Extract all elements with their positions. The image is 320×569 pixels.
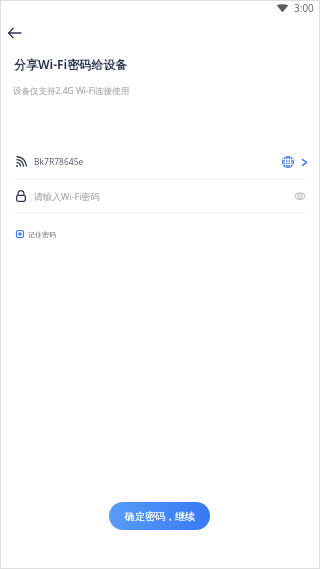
button[interactable]: 记住密码: [16, 226, 60, 242]
staticText: 分享Wi-Fi密码给设备: [14, 56, 128, 72]
other: Choose network: [302, 159, 307, 166]
staticText: Bk7R78645e: [34, 156, 84, 168]
staticText: 确定密码，继续: [125, 510, 195, 523]
button[interactable]: 请输入Wi-Fi密码: [0, 179, 320, 213]
button[interactable]: Back: [4, 22, 25, 43]
button[interactable]: Show password: [292, 188, 308, 204]
staticText: 3:00: [294, 1, 314, 15]
button[interactable]: 确定密码，继续: [109, 502, 210, 530]
staticText: 记住密码: [28, 230, 56, 239]
staticText: 请输入Wi-Fi密码: [34, 190, 100, 202]
staticText: 设备仅支持2.4G Wi-Fi连接使用: [13, 85, 130, 97]
other: Network: [282, 156, 294, 168]
button[interactable]: Bk7R78645e: [0, 145, 320, 179]
